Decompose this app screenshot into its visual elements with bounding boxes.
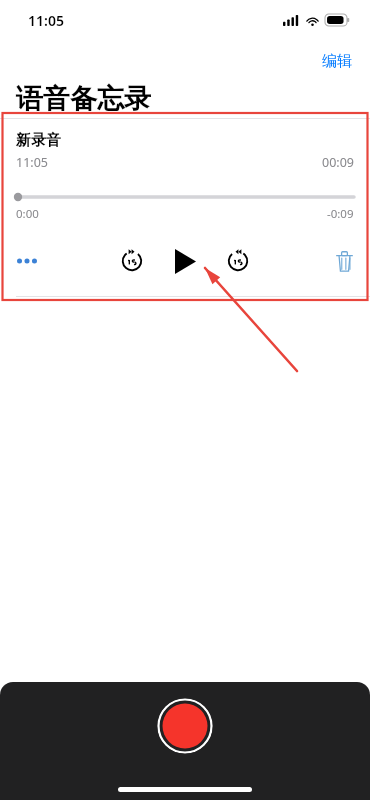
- button[interactable]: Skip forward 15 seconds: [221, 244, 255, 278]
- button[interactable]: Record: [157, 698, 213, 754]
- button[interactable]: More options: [10, 244, 44, 278]
- staticText: 0:00: [16, 206, 39, 222]
- staticText: 00:09: [322, 154, 354, 171]
- button[interactable]: Delete: [327, 244, 361, 278]
- staticText: 11:05: [16, 154, 48, 171]
- button[interactable]: 新录音: [0, 119, 370, 297]
- staticText: 语音备忘录: [16, 82, 151, 116]
- button[interactable]: Playback position: [16, 191, 354, 203]
- staticText: -0:09: [327, 206, 354, 222]
- button[interactable]: Skip back 15 seconds: [115, 244, 149, 278]
- staticText: 新录音: [16, 131, 61, 150]
- button[interactable]: Play: [165, 244, 205, 278]
- button[interactable]: 编辑: [316, 49, 358, 74]
- staticText: 11:05: [28, 11, 64, 30]
- staticText: 编辑: [322, 52, 352, 71]
